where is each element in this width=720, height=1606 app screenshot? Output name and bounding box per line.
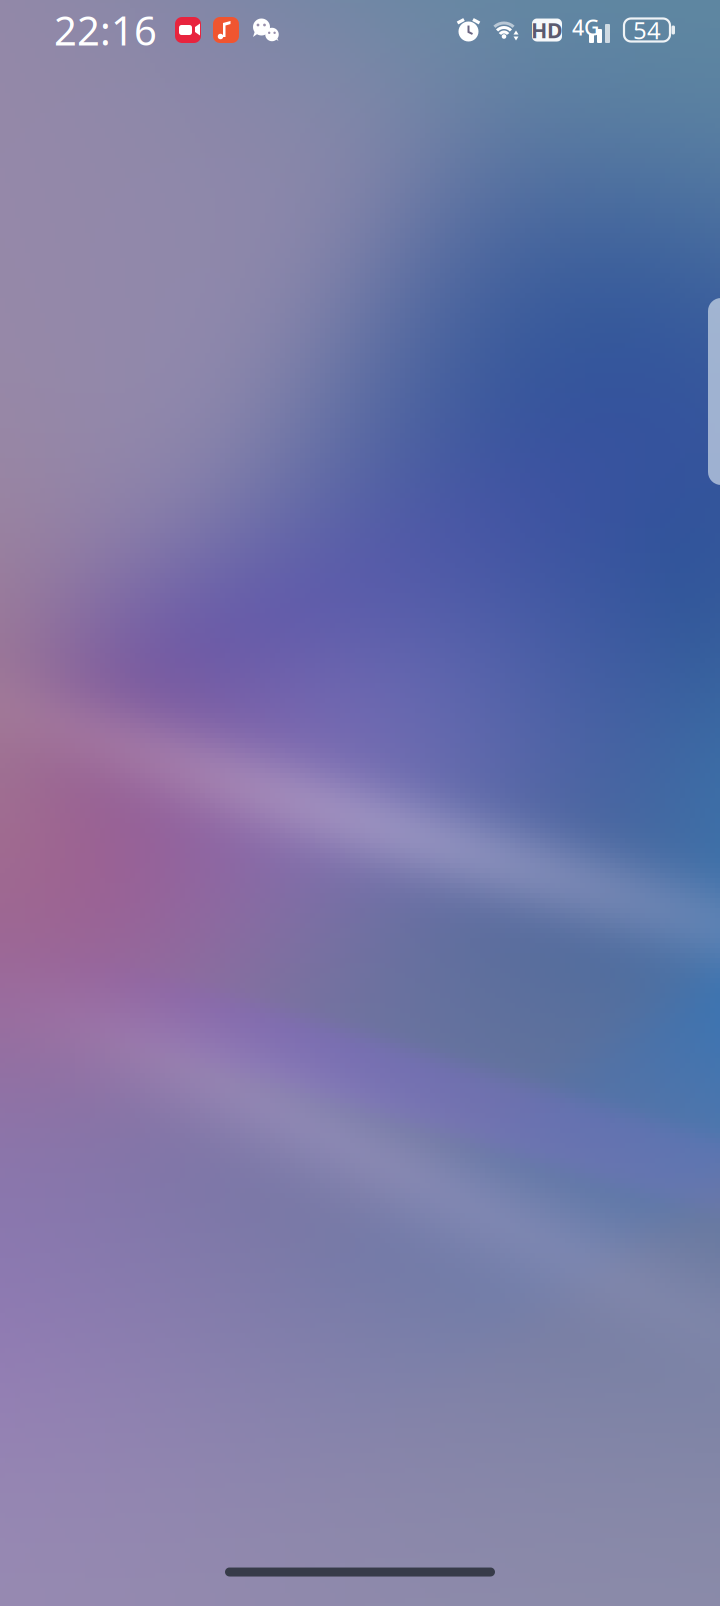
button[interactable]: Home [0, 1552, 720, 1592]
staticText: HD [531, 16, 563, 44]
staticText: 54 [633, 14, 661, 46]
staticText: 4G [572, 13, 600, 41]
staticText: 22:16 [54, 3, 157, 56]
